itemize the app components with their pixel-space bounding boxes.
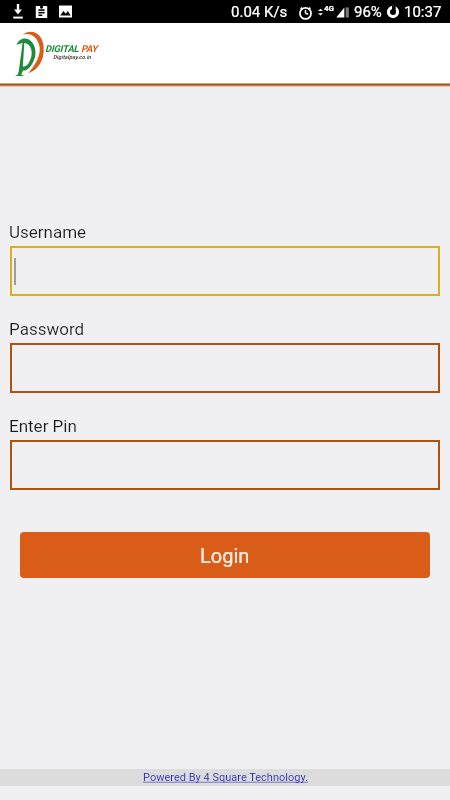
staticText: Username xyxy=(9,222,87,242)
staticText: Login xyxy=(200,544,250,567)
staticText: Password xyxy=(9,319,85,339)
button[interactable]: Powered By 4 Square Technology. xyxy=(0,769,450,786)
button[interactable]: Username input field xyxy=(10,246,440,296)
button[interactable]: Login xyxy=(20,532,430,578)
other: Digital Pay logo xyxy=(15,29,44,77)
button[interactable]: Password input field xyxy=(10,343,440,393)
staticText: 10:37 xyxy=(404,3,442,21)
button[interactable]: Enter Pin input field xyxy=(10,440,440,490)
staticText: DIGITAL xyxy=(45,43,79,54)
staticText: Enter Pin xyxy=(9,416,77,436)
staticText: 96% xyxy=(354,3,382,21)
staticText: PAY xyxy=(81,43,98,54)
staticText: Powered By 4 Square Technology. xyxy=(143,771,308,784)
staticText: Digitalpay.co.in xyxy=(53,54,91,60)
staticText: 0.04 K/s xyxy=(231,3,288,21)
staticText: 4G xyxy=(324,4,335,13)
